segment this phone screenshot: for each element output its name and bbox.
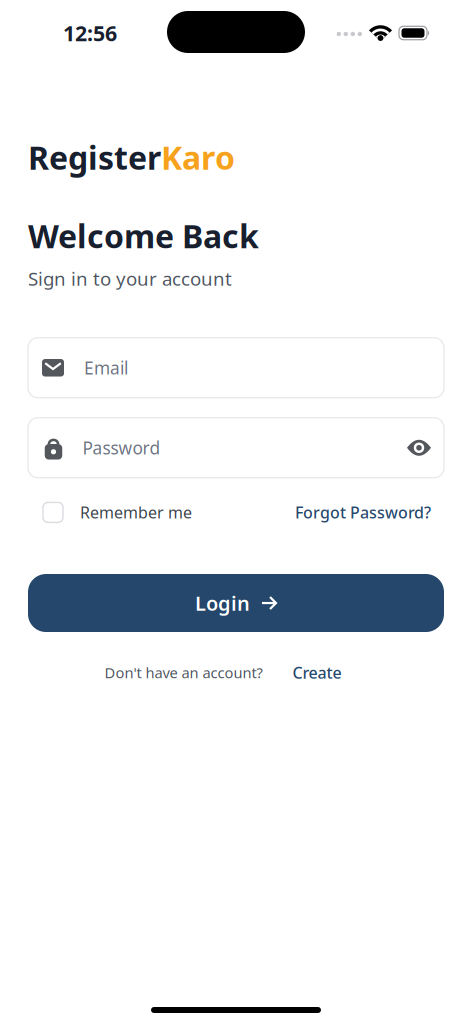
- staticText: Don't have an account?: [104, 663, 262, 682]
- button[interactable]: Password: [28, 418, 444, 478]
- button[interactable]: Show password: [407, 441, 444, 454]
- button[interactable]: Email: [28, 338, 444, 398]
- staticText: Forgot Password?: [295, 502, 431, 523]
- button[interactable]: Remember me: [43, 502, 192, 523]
- staticText: Email: [84, 356, 128, 379]
- staticText: Register: [28, 136, 161, 178]
- staticText: Welcome Back: [28, 214, 259, 257]
- button[interactable]: Forgot Password?: [295, 502, 431, 523]
- staticText: Remember me: [80, 502, 192, 523]
- button[interactable]: Create: [292, 662, 341, 683]
- staticText: Login: [195, 590, 250, 616]
- staticText: Karo: [161, 136, 235, 178]
- staticText: Sign in to your account: [28, 266, 232, 291]
- button[interactable]: Login: [28, 574, 444, 632]
- staticText: Password: [82, 436, 160, 459]
- staticText: 12:56: [63, 19, 117, 47]
- staticText: Create: [292, 662, 341, 683]
